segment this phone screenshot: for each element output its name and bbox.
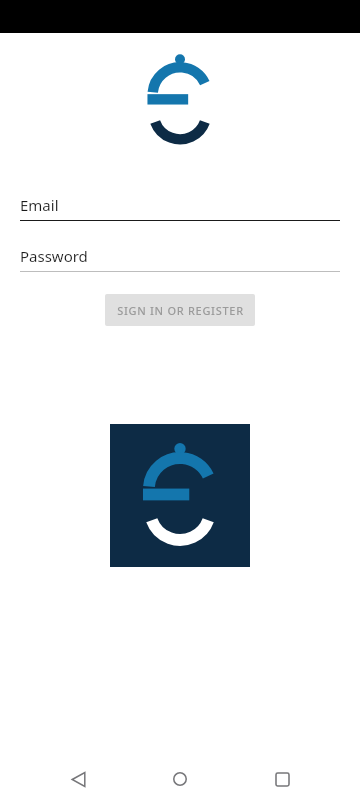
staticText: SIGN IN OR REGISTER [117, 303, 244, 318]
staticText: Email [20, 195, 59, 215]
button[interactable]: Home [156, 758, 204, 800]
button[interactable]: SIGN IN OR REGISTER [105, 294, 255, 326]
button[interactable]: Recent apps [258, 758, 306, 800]
staticText: Password [20, 246, 88, 266]
button[interactable]: App logo [110, 424, 250, 567]
button[interactable]: Password [0, 241, 360, 272]
button[interactable]: Email [0, 190, 360, 221]
button[interactable]: Back [54, 758, 102, 800]
